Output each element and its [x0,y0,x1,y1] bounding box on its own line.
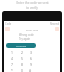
button[interactable]: 5 [17,55,26,61]
button[interactable]: 7 [7,61,16,67]
staticText: Try again [19,37,31,41]
staticText: Resend [50,22,59,25]
button[interactable]: # [26,67,35,72]
staticText: to verify [26,6,38,10]
button[interactable]: Resend [50,22,59,25]
staticText: 7 [11,62,13,67]
staticText: enter code [26,28,39,31]
button[interactable]: Continue [6,43,36,48]
button[interactable]: * [7,67,16,72]
staticText: Enter the code we sent [16,1,49,5]
staticText: 4 [11,56,13,61]
staticText: 5 [21,56,23,61]
staticText: 2 [21,50,23,55]
staticText: 6 [30,56,32,61]
staticText: 9 [30,62,32,67]
staticText: Wrong code [19,33,34,37]
button[interactable]: 6 [26,55,35,61]
staticText: # [29,68,32,72]
staticText: * [11,68,13,72]
staticText: 3 [30,50,32,55]
staticText: 0 [21,68,23,72]
button[interactable]: 1 [7,49,16,55]
button[interactable]: 8 [17,61,26,67]
staticText: 1 [11,50,13,55]
button[interactable]: 9 [26,61,35,67]
staticText: Code [5,22,12,25]
button[interactable]: 3 [26,49,35,55]
staticText: 8 [21,62,23,67]
staticText: Continue [16,44,27,47]
button[interactable]: 0 [17,67,26,72]
button[interactable]: 4 [7,55,16,61]
button[interactable]: 2 [17,49,26,55]
